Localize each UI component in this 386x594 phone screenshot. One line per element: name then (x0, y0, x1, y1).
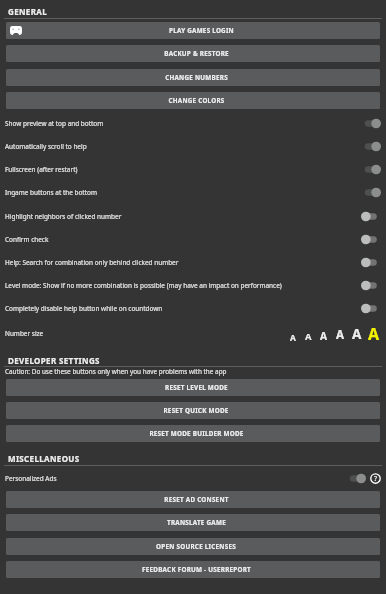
button[interactable]: CHANGE NUMBERS (6, 69, 380, 86)
staticText: A (305, 330, 312, 343)
staticText: ? (374, 474, 378, 484)
staticText: Number size (5, 329, 286, 338)
staticText: RESET LEVEL MODE (165, 383, 228, 392)
staticText: A (368, 323, 380, 343)
staticText: Level mode: Show if no more combination … (5, 281, 361, 290)
staticText: Highlight neighbors of clicked number (5, 212, 361, 221)
button[interactable]: Show preview at top and bottom (0, 112, 386, 135)
button[interactable]: OPEN SOURCE LICENSES (6, 538, 380, 555)
button[interactable]: CHANGE COLORS (6, 92, 380, 109)
staticText: RESET MODE BUILDER MODE (149, 429, 244, 438)
button[interactable]: Help: Search for combination only behind… (0, 251, 386, 274)
staticText: Fullscreen (after restart) (5, 165, 361, 174)
staticText: CHANGE NUMBERS (165, 73, 228, 82)
staticText: A (320, 329, 328, 343)
staticText: A (336, 327, 345, 343)
staticText: GENERAL (8, 6, 47, 17)
button[interactable]: Fullscreen (after restart) (0, 158, 386, 181)
button[interactable]: BACKUP & RESTORE (6, 45, 380, 62)
staticText: Personalized Ads (5, 474, 346, 483)
staticText: FEEDBACK FORUM - USERREPORT (142, 565, 251, 574)
button[interactable]: Help (370, 473, 381, 484)
staticText: BACKUP & RESTORE (164, 49, 229, 58)
button[interactable]: Ingame buttons at the bottom (0, 181, 386, 204)
button[interactable]: Automatically scroll to help (0, 135, 386, 158)
button[interactable]: RESET QUICK MODE (6, 402, 380, 419)
button[interactable]: A (286, 323, 300, 343)
button[interactable]: A (365, 323, 383, 343)
button[interactable]: RESET LEVEL MODE (6, 379, 380, 396)
staticText: Show preview at top and bottom (5, 119, 361, 128)
staticText: OPEN SOURCE LICENSES (156, 542, 236, 551)
button[interactable]: RESET AD CONSENT (6, 491, 380, 508)
button[interactable]: TRANSLATE GAME (6, 514, 380, 531)
staticText: CHANGE COLORS (168, 96, 225, 105)
staticText: RESET AD CONSENT (164, 495, 229, 504)
button[interactable]: A (300, 323, 316, 343)
button[interactable]: A (332, 323, 348, 343)
button[interactable]: Confirm check (0, 228, 386, 251)
staticText: TRANSLATE GAME (167, 518, 226, 527)
button[interactable]: Completely disable help button while on … (0, 297, 386, 320)
button[interactable]: A (348, 323, 365, 343)
button[interactable]: Highlight neighbors of clicked number (0, 205, 386, 228)
staticText: MISCELLANEOUS (8, 453, 80, 464)
staticText: PLAY GAMES LOGIN (169, 26, 234, 35)
staticText: RESET QUICK MODE (163, 406, 229, 415)
button[interactable]: PLAY GAMES LOGIN (6, 22, 380, 39)
staticText: Confirm check (5, 235, 361, 244)
staticText: Ingame buttons at the bottom (5, 188, 361, 197)
staticText: DEVELOPER SETTINGS (8, 355, 100, 366)
button[interactable]: Level mode: Show if no more combination … (0, 274, 386, 297)
staticText: Help: Search for combination only behind… (5, 258, 361, 267)
button[interactable]: A (316, 323, 332, 343)
button[interactable]: RESET MODE BUILDER MODE (6, 425, 380, 442)
staticText: A (352, 324, 362, 343)
staticText: Automatically scroll to help (5, 142, 361, 151)
staticText: Completely disable help button while on … (5, 304, 361, 313)
staticText: A (290, 332, 296, 343)
button[interactable]: FEEDBACK FORUM - USERREPORT (6, 561, 380, 578)
staticText: Caution: Do use these buttons only when … (5, 367, 227, 376)
